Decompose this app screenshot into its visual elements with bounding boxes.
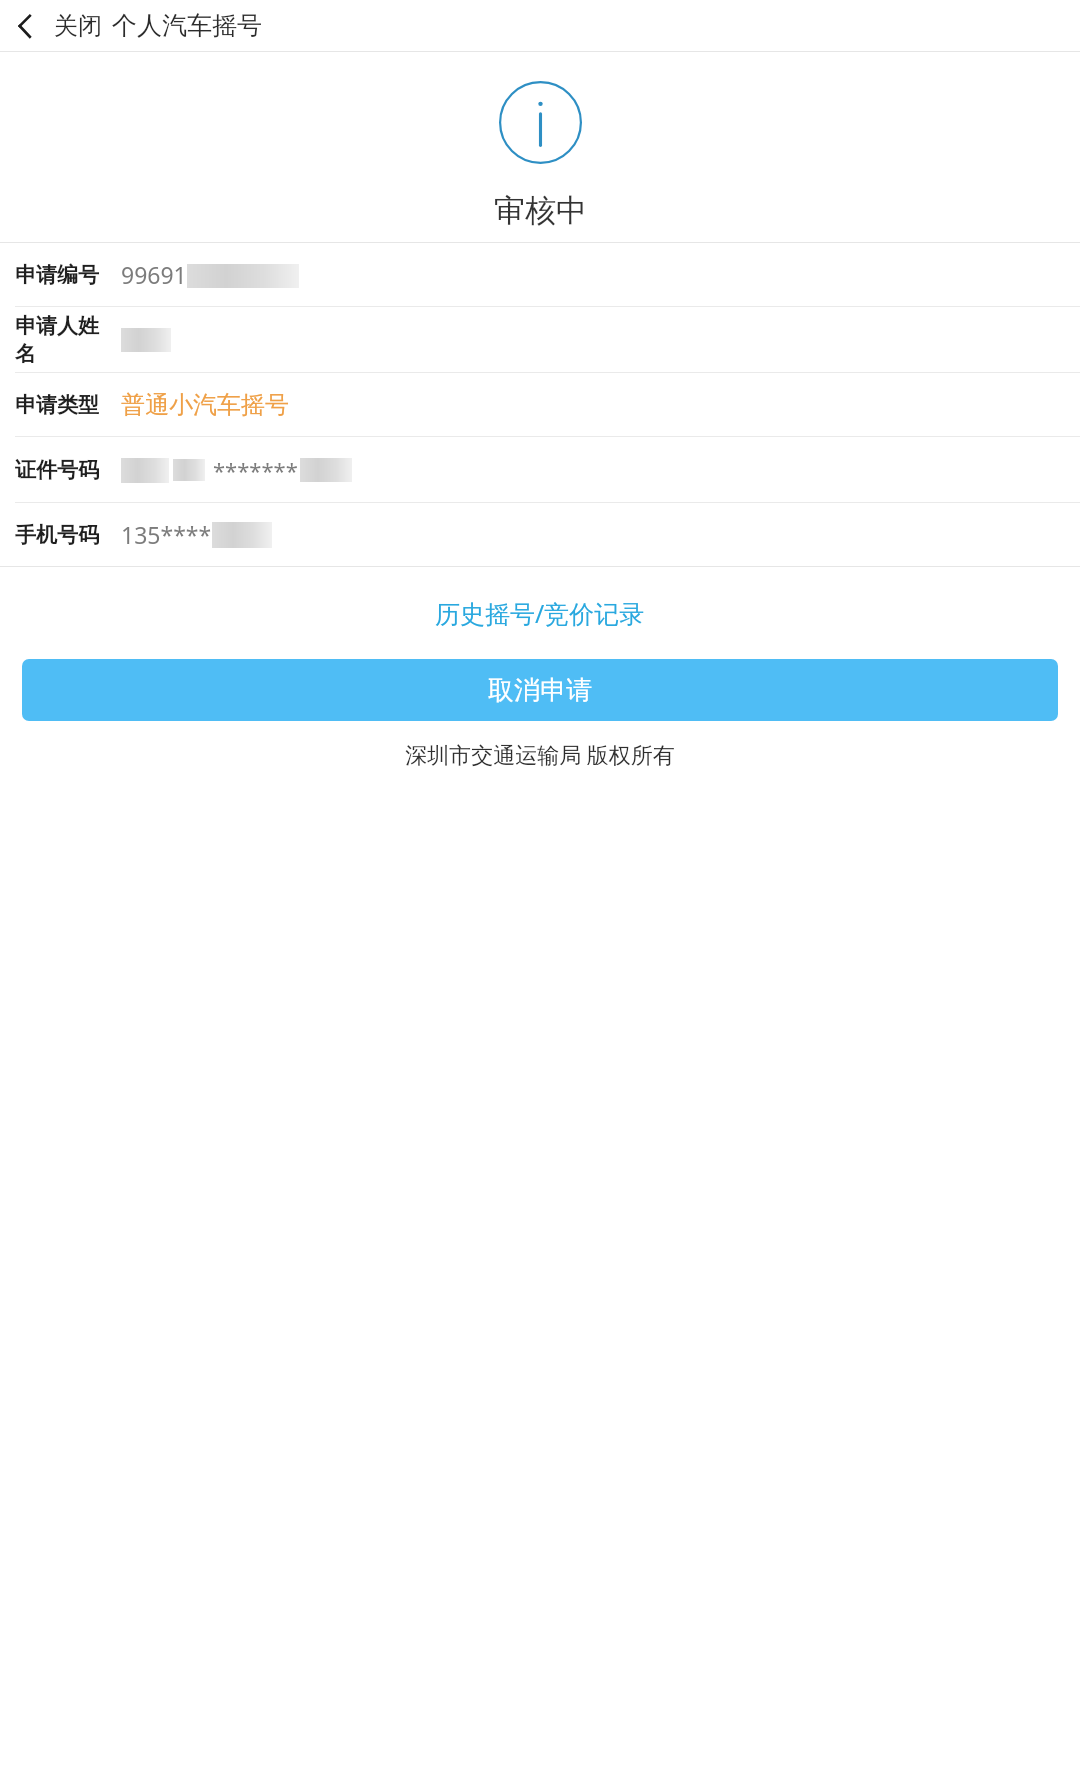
staticText: 135**** [121,519,212,550]
staticText: 99691 [121,259,187,290]
staticText: 审核中 [494,191,587,230]
staticText: 手机号码 [15,522,99,548]
button[interactable]: 证件号码 [0,437,1080,502]
button[interactable]: 历史摇号/竞价记录 [425,588,655,638]
staticText: 证件号码 [15,457,99,483]
button[interactable]: 关闭 [8,5,108,47]
button[interactable]: 申请类型 [0,373,1080,436]
staticText: ******* [213,455,298,485]
button[interactable]: 取消申请 [22,659,1058,721]
staticText: 取消申请 [488,674,592,707]
staticText: 申请类型 [15,392,99,418]
staticText: 个人汽车摇号 [112,10,262,41]
button[interactable]: 手机号码 [0,503,1080,566]
staticText: 历史摇号/竞价记录 [435,596,645,630]
staticText: 申请人姓名 [15,313,115,367]
staticText: 关闭 [54,11,102,41]
staticText: 申请编号 [15,262,99,288]
button[interactable]: 申请编号 [0,243,1080,306]
staticText: 普通小汽车摇号 [121,390,289,420]
staticText: 深圳市交通运输局 版权所有 [405,739,675,769]
button[interactable]: 申请人姓名 [0,307,1080,372]
